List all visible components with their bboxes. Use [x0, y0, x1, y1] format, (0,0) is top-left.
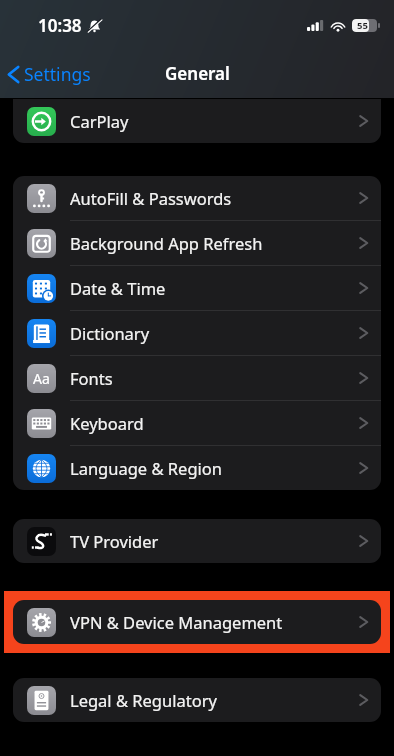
staticText: Settings [24, 62, 91, 86]
button[interactable]: Background App Refresh [13, 221, 381, 265]
button[interactable]: Aa [13, 356, 381, 400]
staticText: CarPlay [70, 110, 129, 132]
staticText: Keyboard [70, 412, 144, 434]
staticText: Language & Region [70, 457, 222, 479]
button[interactable]: AutoFill & Passwords [13, 176, 381, 220]
staticText: Fonts [70, 367, 113, 389]
staticText: VPN & Device Management [70, 611, 283, 633]
staticText: Dictionary [70, 322, 150, 344]
button[interactable]: Settings [0, 57, 99, 91]
button[interactable]: Legal & Regulatory [13, 678, 381, 722]
staticText: TV Provider [70, 530, 159, 552]
button[interactable]: Keyboard [13, 401, 381, 445]
staticText: Legal & Regulatory [70, 689, 217, 711]
button[interactable]: Dictionary [13, 311, 381, 355]
button[interactable]: TV Provider [13, 519, 381, 563]
staticText: General [165, 62, 230, 85]
staticText: Date & Time [70, 277, 166, 299]
button[interactable]: VPN & Device Management [13, 600, 381, 644]
button[interactable]: Date & Time [13, 266, 381, 310]
staticText: Aa [33, 369, 50, 388]
button[interactable]: CarPlay [13, 99, 381, 143]
other: Silent mode [87, 18, 102, 33]
button[interactable]: Language & Region [13, 446, 381, 490]
staticText: 55 [357, 19, 368, 32]
staticText: 10:38 [38, 14, 82, 37]
staticText: AutoFill & Passwords [70, 187, 232, 209]
staticText: Background App Refresh [70, 232, 263, 254]
